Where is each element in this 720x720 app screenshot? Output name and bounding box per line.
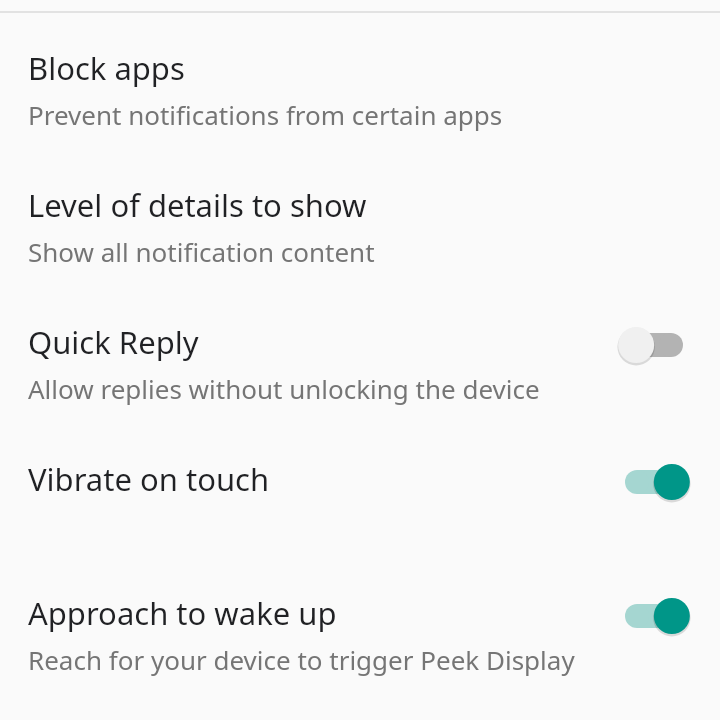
staticText: Show all notification content — [28, 234, 375, 269]
button[interactable]: Quick Reply — [0, 269, 720, 406]
button[interactable]: Vibrate on touch — [0, 406, 720, 530]
staticText: Prevent notifications from certain apps — [28, 97, 503, 132]
staticText: Level of details to show — [28, 184, 367, 226]
staticText: Approach to wake up — [28, 592, 337, 634]
staticText: Block apps — [28, 47, 185, 89]
button[interactable]: Approach to wake up — [0, 530, 720, 677]
button[interactable]: Vibrate on touch, on — [606, 446, 702, 518]
staticText: Vibrate on touch — [28, 458, 270, 500]
button[interactable]: Quick Reply, off — [606, 309, 702, 381]
staticText: Reach for your device to trigger Peek Di… — [28, 642, 575, 677]
button[interactable]: Block apps — [0, 13, 720, 132]
button[interactable]: Level of details to show — [0, 132, 720, 269]
button[interactable]: Approach to wake up, on — [606, 580, 702, 652]
staticText: Allow replies without unlocking the devi… — [28, 371, 540, 406]
staticText: Quick Reply — [28, 321, 199, 363]
